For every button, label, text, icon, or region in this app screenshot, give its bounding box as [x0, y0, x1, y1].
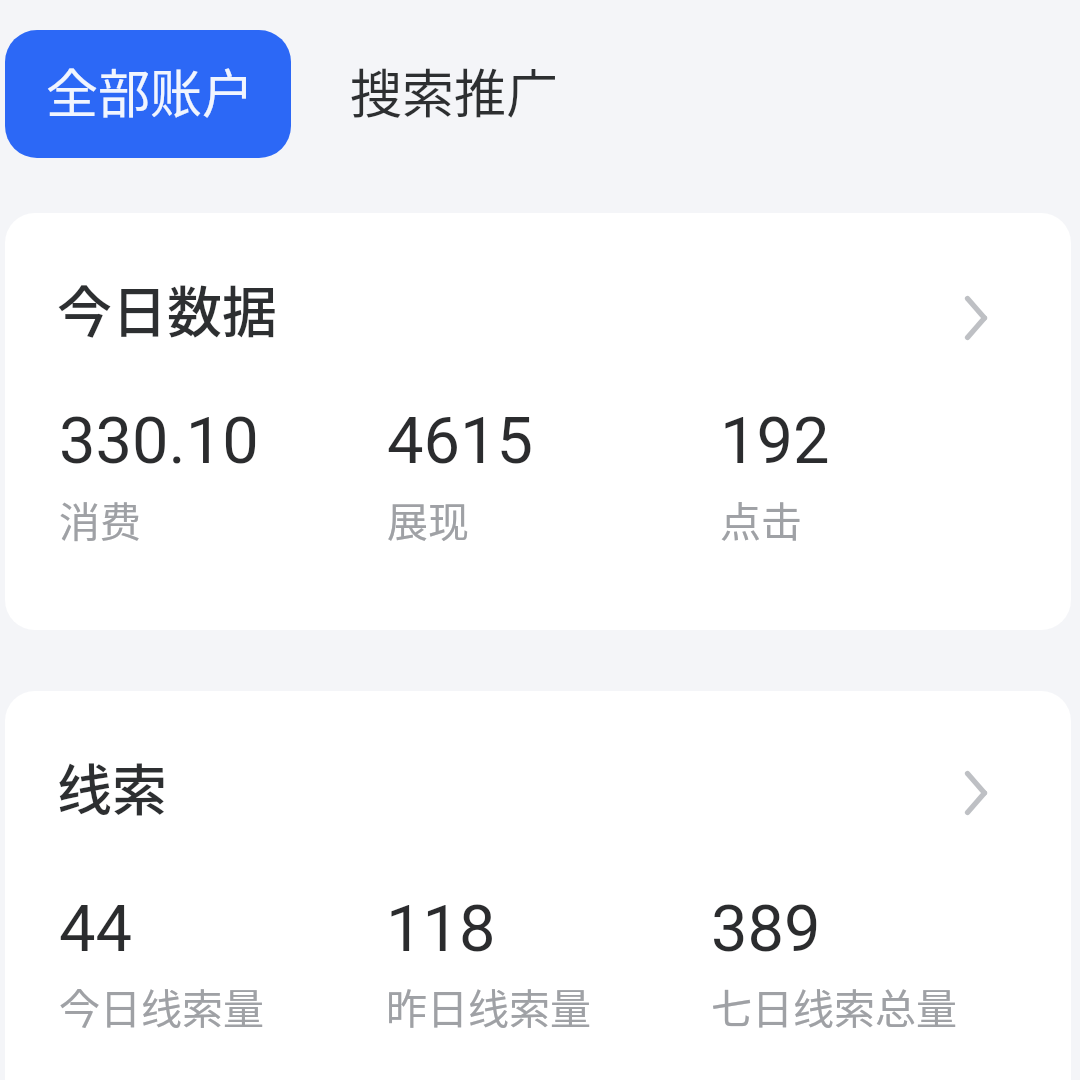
staticText: 192 [720, 400, 830, 480]
staticText: 今日线索量 [59, 982, 264, 1034]
staticText: 线索 [57, 754, 168, 824]
button[interactable]: Open 今日数据 details [928, 270, 1024, 366]
staticText: 118 [386, 888, 496, 968]
staticText: 330.10 [59, 400, 259, 480]
button[interactable]: Open 线索 details [928, 745, 1024, 841]
staticText: 4615 [387, 400, 534, 480]
staticText: 389 [711, 888, 821, 968]
button[interactable]: 今日数据 [5, 213, 1071, 630]
button[interactable]: 搜索推广 [331, 30, 555, 158]
staticText: 昨日线索量 [386, 982, 591, 1034]
staticText: 全部账户 [46, 60, 255, 126]
staticText: 点击 [720, 495, 802, 547]
staticText: 今日数据 [57, 276, 278, 346]
staticText: 44 [59, 888, 133, 968]
staticText: 七日线索总量 [711, 982, 957, 1034]
staticText: 消费 [59, 495, 141, 547]
button[interactable]: 全部账户 [5, 30, 291, 158]
button[interactable]: 线索 [5, 691, 1071, 1080]
staticText: 展现 [387, 495, 469, 547]
staticText: 搜索推广 [350, 60, 555, 126]
